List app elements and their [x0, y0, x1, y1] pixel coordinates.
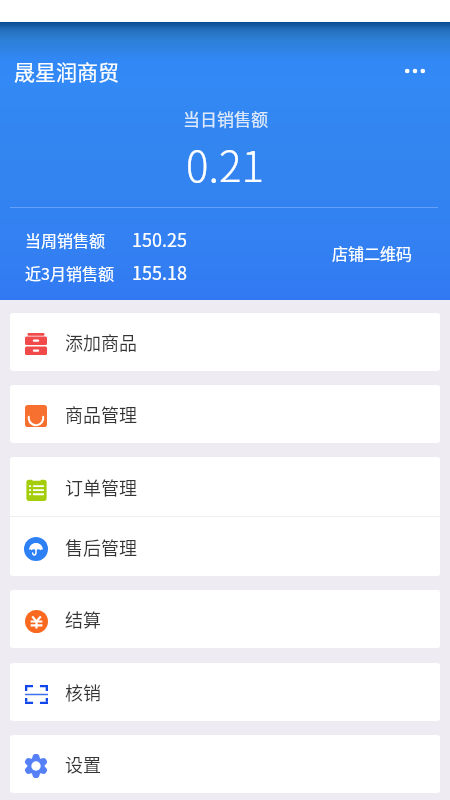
staticText: 晟星润商贸 — [14, 56, 119, 86]
staticText: 结算 — [65, 606, 101, 632]
staticText: 商品管理 — [65, 401, 137, 427]
staticText: 订单管理 — [65, 474, 137, 500]
staticText: 核销 — [65, 679, 101, 705]
button[interactable]: 核销 — [10, 663, 440, 721]
staticText: 当日销售额 — [183, 106, 268, 131]
staticText: 155.18 — [132, 259, 187, 285]
button[interactable]: More options — [393, 49, 437, 93]
button[interactable]: 添加商品 — [10, 313, 440, 371]
button[interactable]: 结算 — [10, 590, 440, 648]
button[interactable]: 店铺二维码 — [327, 234, 418, 271]
staticText: 设置 — [65, 751, 101, 777]
staticText: 添加商品 — [65, 329, 137, 355]
staticText: 近3月销售额 — [25, 261, 114, 284]
staticText: 0.21 — [186, 133, 264, 194]
staticText: 150.25 — [132, 226, 187, 252]
button[interactable]: 售后管理 — [10, 517, 440, 576]
button[interactable]: 商品管理 — [10, 385, 440, 443]
button[interactable]: 晟星润商贸 — [14, 56, 119, 86]
button[interactable]: 订单管理 — [10, 457, 440, 516]
button[interactable]: 设置 — [10, 735, 440, 793]
staticText: 售后管理 — [65, 534, 137, 560]
staticText: 当周销售额 — [25, 228, 106, 251]
staticText: 店铺二维码 — [332, 241, 413, 264]
